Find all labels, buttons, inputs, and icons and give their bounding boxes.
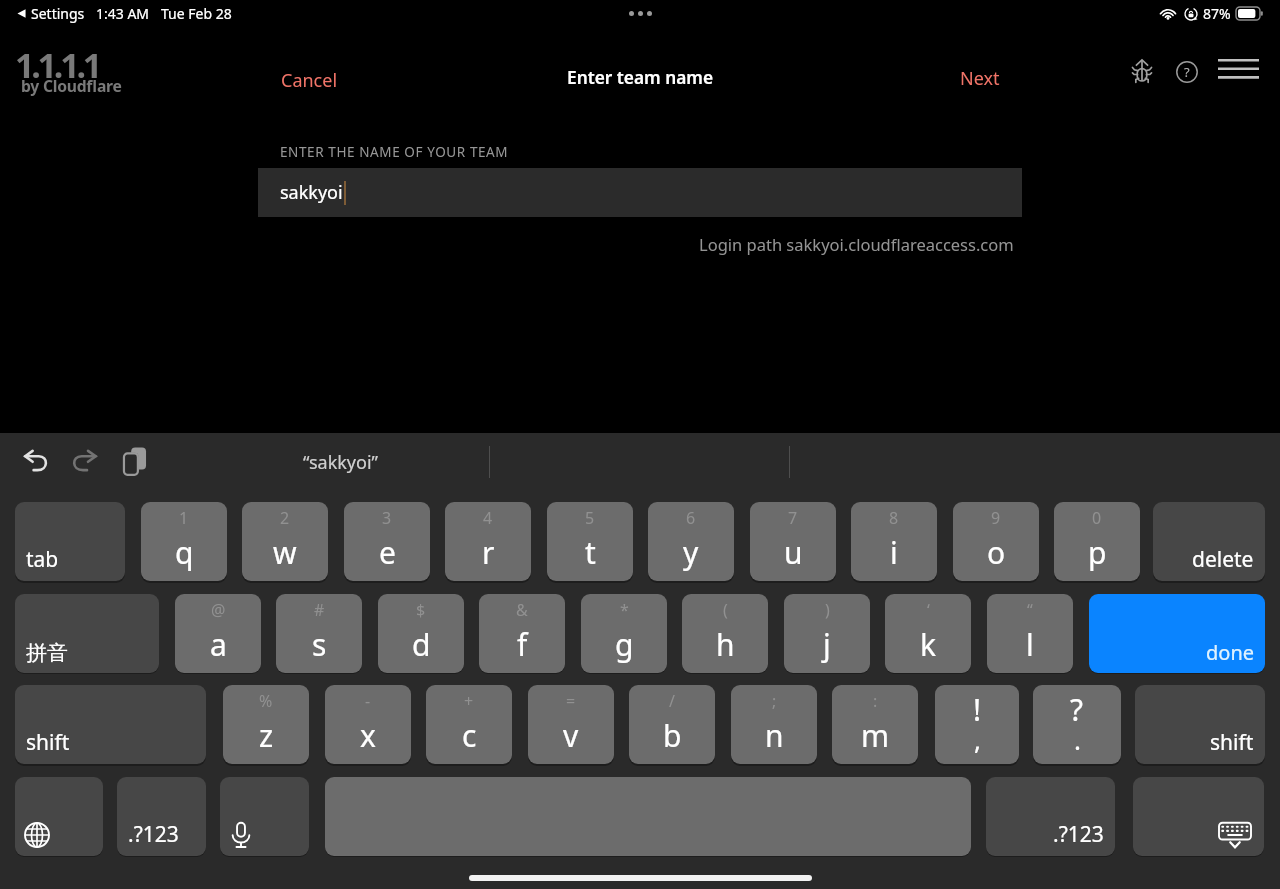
staticText: + bbox=[464, 690, 474, 712]
staticText: 9 bbox=[991, 507, 1001, 529]
staticText: shift bbox=[1210, 728, 1254, 757]
staticText: c bbox=[462, 715, 477, 756]
button[interactable]: ? bbox=[1033, 685, 1121, 764]
button[interactable]: 7 bbox=[750, 502, 836, 581]
button[interactable]: ( bbox=[682, 594, 768, 673]
staticText: Enter team name bbox=[567, 66, 714, 90]
button[interactable]: 2 bbox=[242, 502, 328, 581]
staticText: Login path sakkyoi.cloudflareaccess.com bbox=[699, 233, 1014, 255]
staticText: v bbox=[563, 715, 579, 756]
button[interactable]: 1 bbox=[141, 502, 227, 581]
staticText: 87% bbox=[1203, 4, 1231, 23]
staticText: n bbox=[765, 715, 784, 756]
button[interactable]: Cancel bbox=[281, 68, 338, 93]
staticText: / bbox=[669, 690, 675, 712]
button[interactable]: - bbox=[325, 685, 411, 764]
staticText: l bbox=[1026, 624, 1034, 665]
button[interactable]: Change keyboard bbox=[15, 777, 103, 856]
staticText: t bbox=[585, 532, 596, 573]
button[interactable]: 6 bbox=[648, 502, 734, 581]
button[interactable]: “ bbox=[987, 594, 1073, 673]
button[interactable]: : bbox=[832, 685, 918, 764]
button[interactable]: Report a bug bbox=[1128, 56, 1156, 84]
button[interactable]: delete bbox=[1153, 502, 1265, 581]
staticText: Tue Feb 28 bbox=[161, 4, 232, 23]
staticText: 1 bbox=[179, 507, 189, 529]
staticText: ; bbox=[772, 690, 777, 712]
button[interactable]: Redo bbox=[72, 450, 97, 471]
button[interactable]: Menu bbox=[1218, 58, 1259, 82]
staticText: Cancel bbox=[281, 68, 338, 93]
button[interactable]: = bbox=[528, 685, 614, 764]
staticText: done bbox=[1206, 639, 1255, 666]
button[interactable]: ‘ bbox=[885, 594, 971, 673]
staticText: y bbox=[683, 532, 699, 573]
staticText: m bbox=[861, 715, 890, 756]
button[interactable]: @ bbox=[175, 594, 261, 673]
staticText: & bbox=[516, 599, 528, 621]
staticText: 4 bbox=[483, 507, 493, 529]
button[interactable]: % bbox=[223, 685, 309, 764]
staticText: 8 bbox=[889, 507, 899, 529]
staticText: i bbox=[890, 532, 898, 573]
staticText: r bbox=[482, 532, 495, 573]
button[interactable]: 0 bbox=[1054, 502, 1140, 581]
button[interactable]: ; bbox=[731, 685, 817, 764]
button[interactable]: & bbox=[479, 594, 565, 673]
staticText: ENTER THE NAME OF YOUR TEAM bbox=[280, 143, 509, 161]
staticText: shift bbox=[26, 728, 70, 757]
button[interactable]: $ bbox=[378, 594, 464, 673]
staticText: s bbox=[312, 624, 327, 665]
staticText: 1.1.1.1 bbox=[15, 42, 100, 88]
staticText: sakkyoi bbox=[280, 180, 343, 205]
button[interactable]: 拼音 bbox=[15, 594, 159, 673]
button[interactable]: Next bbox=[960, 66, 1000, 91]
staticText: = bbox=[566, 690, 576, 712]
button[interactable]: tab bbox=[15, 502, 125, 581]
staticText: u bbox=[784, 532, 803, 573]
staticText: ( bbox=[723, 599, 728, 621]
staticText: 7 bbox=[788, 507, 798, 529]
button[interactable]: * bbox=[581, 594, 667, 673]
staticText: $ bbox=[416, 599, 426, 621]
button[interactable]: 8 bbox=[851, 502, 937, 581]
button[interactable]: Dictation bbox=[220, 777, 309, 856]
button[interactable]: / bbox=[629, 685, 715, 764]
button[interactable]: 9 bbox=[953, 502, 1039, 581]
button[interactable]: Undo bbox=[24, 450, 48, 471]
staticText: Next bbox=[960, 66, 1000, 91]
button[interactable]: Paste bbox=[123, 447, 147, 476]
button[interactable]: # bbox=[276, 594, 362, 673]
button[interactable]: ! bbox=[935, 685, 1019, 764]
staticText: h bbox=[716, 624, 735, 665]
button[interactable]: 3 bbox=[344, 502, 430, 581]
staticText: g bbox=[615, 624, 634, 665]
staticText: ? bbox=[1070, 689, 1084, 730]
staticText: by Cloudflare bbox=[21, 75, 122, 96]
staticText: 3 bbox=[382, 507, 392, 529]
staticText: 6 bbox=[686, 507, 696, 529]
button[interactable]: Hide keyboard bbox=[1133, 777, 1264, 856]
staticText: # bbox=[314, 599, 325, 621]
staticText: j bbox=[823, 624, 831, 665]
button[interactable]: shift bbox=[15, 685, 206, 764]
button[interactable]: 4 bbox=[445, 502, 531, 581]
button[interactable]: Back to Settings bbox=[17, 4, 232, 23]
button[interactable]: .?123 bbox=[117, 777, 206, 856]
button[interactable]: shift bbox=[1135, 685, 1265, 764]
button[interactable]: sakkyoi bbox=[258, 168, 1022, 217]
staticText: 5 bbox=[585, 507, 595, 529]
staticText: k bbox=[920, 624, 937, 665]
button[interactable]: ) bbox=[784, 594, 870, 673]
button[interactable]: Help bbox=[1176, 61, 1198, 83]
staticText: ! bbox=[973, 689, 982, 730]
staticText: ) bbox=[825, 599, 830, 621]
staticText: x bbox=[360, 715, 376, 756]
button[interactable]: done bbox=[1089, 594, 1265, 673]
staticText: o bbox=[987, 532, 1006, 573]
button[interactable]: .?123 bbox=[986, 777, 1115, 856]
button[interactable]: + bbox=[426, 685, 512, 764]
button[interactable]: 5 bbox=[547, 502, 633, 581]
staticText: % bbox=[259, 690, 273, 712]
